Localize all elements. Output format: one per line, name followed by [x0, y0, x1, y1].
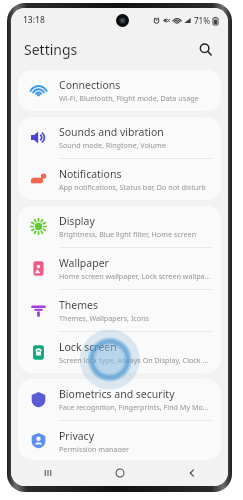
staticText: Themes [59, 298, 99, 312]
staticText: App notifications, Status bar, Do not di… [59, 182, 206, 192]
staticText: 71% [194, 15, 210, 26]
staticText: Sound mode, Ringtone, Volume [59, 140, 166, 150]
staticText: Display [59, 214, 95, 228]
button[interactable]: Themes [18, 290, 221, 331]
button[interactable]: Lock screen [18, 332, 221, 373]
button[interactable]: Search [192, 36, 218, 62]
staticText: Permission manager [59, 444, 130, 452]
staticText: Wi-Fi, Bluetooth, Flight mode, Data usag… [59, 93, 199, 103]
button[interactable]: Display [18, 206, 221, 247]
staticText: Sounds and vibration [59, 125, 164, 139]
staticText: Screen lock type, Always On Display, Clo… [59, 355, 211, 365]
staticText: Biometrics and security [59, 387, 175, 401]
button[interactable]: Back [156, 460, 228, 486]
staticText: Wallpaper [59, 256, 109, 270]
button[interactable]: Recents [11, 460, 84, 486]
staticText: Home screen wallpaper, Lock screen wallp… [59, 271, 211, 281]
staticText: Settings [24, 40, 78, 59]
staticText: Face recognition, Fingerprints, Find My … [59, 402, 211, 412]
button[interactable]: Wallpaper [18, 248, 221, 289]
button[interactable]: Biometrics and security [18, 379, 221, 420]
staticText: 13:18 [23, 14, 45, 26]
button[interactable]: Sounds and vibration [18, 117, 221, 158]
staticText: Notifications [59, 167, 122, 181]
button[interactable]: Privacy [18, 421, 221, 460]
staticText: Privacy [59, 429, 95, 443]
button[interactable]: Notifications [18, 159, 221, 200]
staticText: Connections [59, 78, 121, 92]
button[interactable]: Connections [18, 70, 221, 111]
staticText: Lock screen [59, 340, 117, 354]
staticText: Brightness, Blue light filter, Home scre… [59, 229, 197, 239]
button[interactable]: Home [84, 460, 156, 486]
staticText: Themes, Wallpapers, Icons [59, 313, 150, 323]
